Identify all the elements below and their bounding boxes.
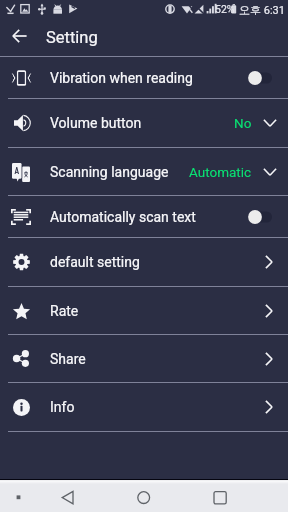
staticText: Scanning language [50, 164, 197, 180]
button[interactable]: Rate [0, 287, 288, 335]
button[interactable]: Scanning language [0, 148, 288, 196]
button[interactable]: Keyboard [0, 479, 96, 512]
staticText: 오후 6:31 [239, 3, 285, 17]
staticText: Automatic [189, 164, 252, 180]
staticText: Share [50, 351, 273, 367]
button[interactable]: Back [3, 20, 37, 56]
button[interactable]: Share [0, 335, 288, 382]
staticText: Info [50, 399, 273, 415]
staticText: Vibration when reading [50, 70, 256, 86]
staticText: default setting [50, 254, 273, 270]
button[interactable]: Automatically scan text [0, 196, 288, 237]
staticText: 52% [215, 3, 235, 15]
staticText: Setting [46, 28, 98, 47]
button[interactable]: Vibration when reading [0, 57, 288, 98]
staticText: Rate [50, 303, 273, 319]
staticText: No [234, 115, 252, 131]
staticText: Volume button [50, 115, 242, 131]
button[interactable]: default setting [0, 238, 288, 286]
staticText: Automatically scan text [50, 209, 256, 225]
button[interactable]: Volume button [0, 99, 288, 147]
button[interactable]: Info [0, 383, 288, 431]
